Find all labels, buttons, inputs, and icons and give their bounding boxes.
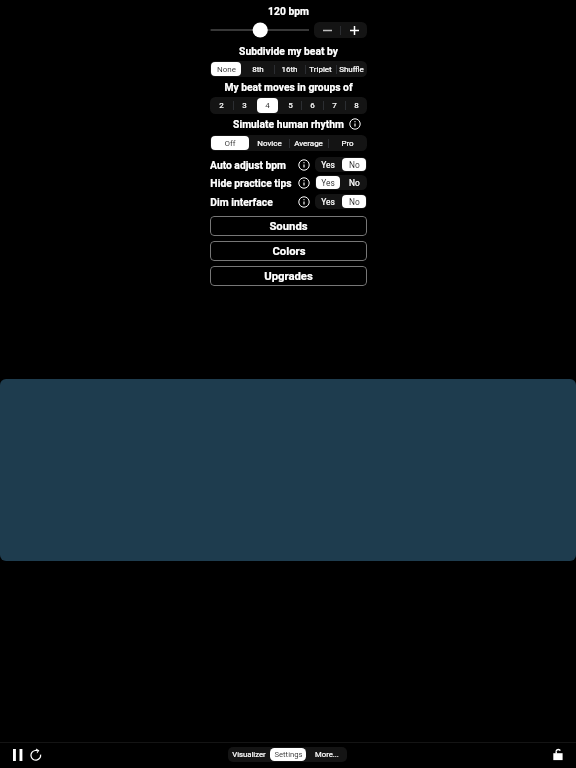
staticText: Hide practice tips — [210, 177, 292, 189]
button[interactable]: 6 — [302, 98, 322, 113]
staticText: Triplet — [309, 65, 332, 74]
staticText: No — [349, 160, 360, 170]
staticText: Shuffle — [339, 65, 364, 74]
staticText: Yes — [321, 160, 335, 170]
staticText: Upgrades — [264, 270, 313, 283]
staticText: Sounds — [269, 220, 308, 233]
staticText: Average — [294, 139, 323, 148]
button[interactable]: Yes — [316, 195, 340, 208]
staticText: 3 — [242, 101, 247, 110]
button[interactable]: 8th — [243, 62, 273, 76]
staticText: Auto adjust bpm — [210, 159, 286, 171]
button[interactable]: Upgrades — [210, 266, 367, 286]
staticText: 8th — [252, 65, 264, 74]
staticText: Visualizer — [232, 750, 266, 759]
staticText: Yes — [321, 197, 335, 207]
staticText: More... — [315, 750, 339, 759]
staticText: 4 — [265, 101, 270, 110]
button[interactable]: No — [342, 176, 366, 189]
button[interactable]: 4 — [257, 98, 278, 113]
staticText: Settings — [274, 750, 303, 759]
staticText: 16th — [281, 65, 298, 74]
staticText: 8 — [354, 101, 359, 110]
button[interactable]: 7 — [324, 98, 344, 113]
button[interactable]: Average — [290, 136, 327, 150]
button[interactable]: None — [211, 62, 241, 76]
button[interactable]: More... — [308, 748, 345, 761]
button[interactable]: No — [342, 158, 366, 171]
button[interactable]: 2 — [211, 98, 232, 113]
button[interactable]: Pause — [7, 746, 29, 764]
staticText: Novice — [257, 139, 282, 148]
staticText: None — [217, 65, 236, 74]
staticText: 5 — [288, 101, 293, 110]
staticText: No — [349, 197, 360, 207]
button[interactable]: Settings — [270, 748, 306, 761]
button[interactable]: About Dim interface — [298, 196, 310, 208]
button[interactable]: Reset — [26, 746, 46, 764]
button[interactable]: Colors — [210, 241, 367, 261]
button[interactable]: Off — [211, 136, 249, 150]
staticText: 6 — [310, 101, 315, 110]
staticText: 120 bpm — [210, 5, 367, 17]
staticText: No — [349, 178, 360, 188]
button[interactable]: Yes — [316, 158, 340, 171]
staticText: Dim interface — [210, 196, 273, 208]
staticText: Off — [224, 139, 236, 148]
staticText: Colors — [272, 245, 306, 258]
button[interactable]: 8 — [346, 98, 366, 113]
button[interactable]: Visualizer — [229, 748, 268, 761]
button[interactable]: Unlock screen — [549, 746, 567, 764]
staticText: My beat moves in groups of — [210, 81, 367, 93]
button[interactable]: 5 — [280, 98, 300, 113]
staticText: 7 — [332, 101, 337, 110]
staticText: Yes — [321, 178, 335, 188]
staticText: Subdivide my beat by — [210, 45, 367, 57]
button[interactable]: Sounds — [210, 216, 367, 236]
button[interactable]: About Auto adjust bpm — [298, 159, 310, 171]
button[interactable]: Decrease tempo — [314, 22, 340, 38]
button[interactable]: Novice — [251, 136, 288, 150]
button[interactable]: About simulate human rhythm — [349, 118, 361, 130]
button[interactable]: Shuffle — [337, 62, 366, 76]
button[interactable]: Triplet — [306, 62, 335, 76]
button[interactable]: Increase tempo — [341, 22, 367, 38]
button[interactable]: 3 — [234, 98, 255, 113]
button[interactable]: Pro — [329, 136, 366, 150]
button[interactable]: No — [342, 195, 366, 208]
button[interactable]: 16th — [275, 62, 304, 76]
staticText: Pro — [341, 139, 354, 148]
staticText: Simulate human rhythm — [210, 118, 367, 130]
button[interactable]: About Hide practice tips — [298, 177, 310, 189]
button[interactable]: Yes — [316, 176, 340, 189]
staticText: 2 — [219, 101, 224, 110]
